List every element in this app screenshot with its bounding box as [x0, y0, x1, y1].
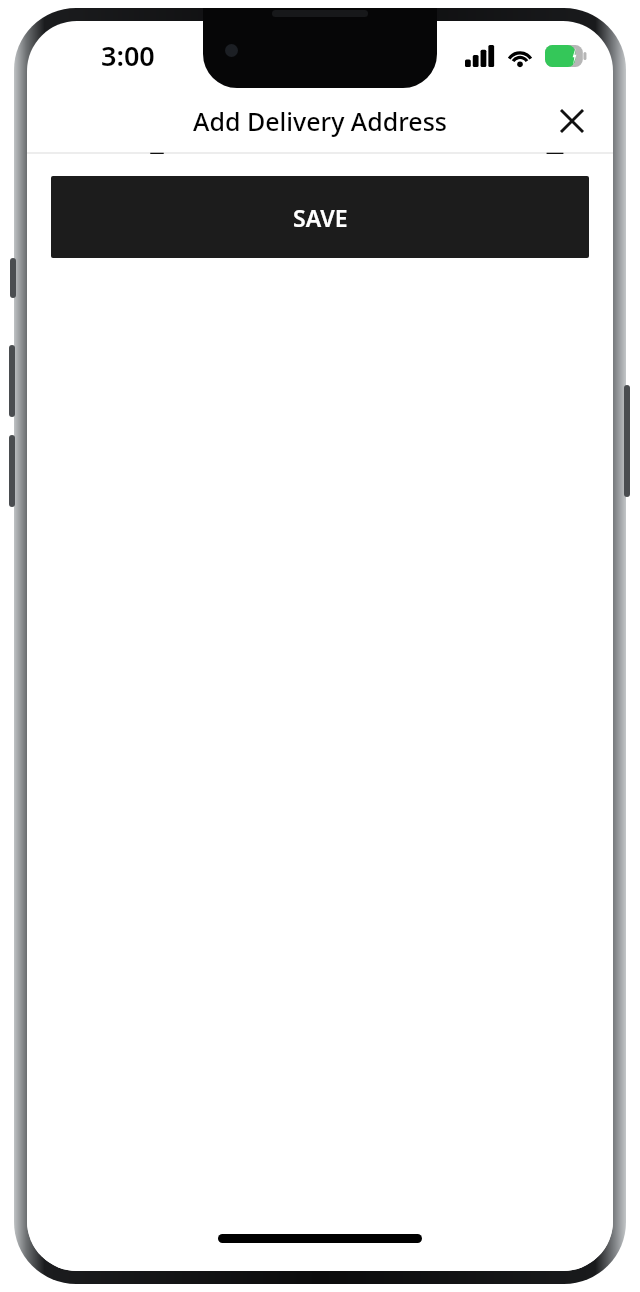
button[interactable]: SAVE [51, 176, 589, 258]
staticText: SAVE [293, 202, 348, 233]
button[interactable]: Close [549, 98, 595, 144]
staticText: Add Delivery Address [193, 104, 447, 138]
staticText: 3:00 [101, 37, 155, 74]
